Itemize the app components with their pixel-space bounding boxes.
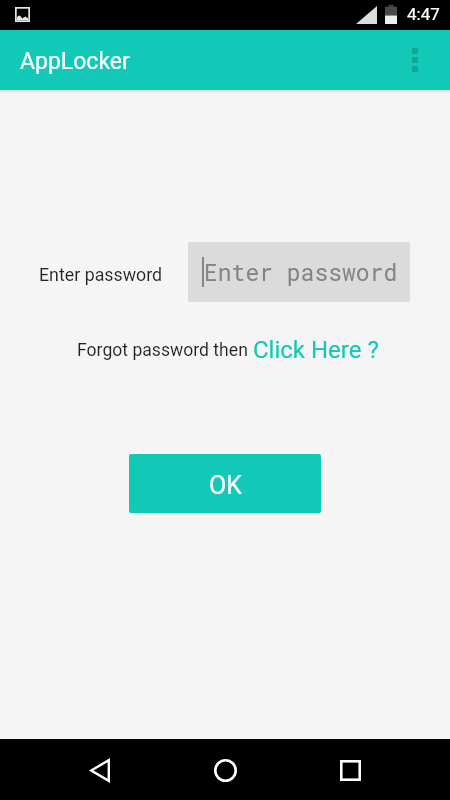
button[interactable]: Recent apps	[326, 746, 374, 794]
staticText: Click Here ?	[253, 336, 379, 364]
staticText: Enter password	[204, 257, 398, 287]
staticText: AppLocker	[20, 48, 130, 75]
button[interactable]: More options	[391, 30, 439, 90]
button[interactable]: OK	[129, 454, 321, 513]
button[interactable]: Click Here ?	[253, 336, 379, 364]
staticText: Enter password	[39, 264, 163, 285]
staticText: 4:47	[407, 4, 440, 24]
staticText: Forgot password then	[77, 340, 248, 361]
staticText: OK	[209, 471, 242, 500]
button[interactable]: Back	[76, 746, 124, 794]
button[interactable]: Password input	[188, 242, 410, 302]
button[interactable]: Home	[201, 746, 249, 794]
